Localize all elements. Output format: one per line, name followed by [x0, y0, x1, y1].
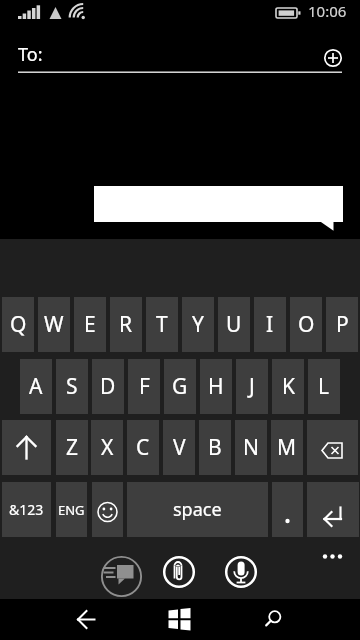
staticText: E — [84, 310, 96, 339]
staticText: Z — [66, 433, 79, 462]
staticText: W — [44, 310, 64, 339]
button[interactable]: Z — [56, 420, 88, 475]
staticText: S — [66, 372, 78, 401]
button[interactable]: W — [38, 297, 70, 352]
button[interactable]: space — [127, 482, 268, 537]
button[interactable]: O — [290, 297, 322, 352]
staticText: V — [173, 433, 186, 462]
staticText: J — [249, 372, 255, 401]
button[interactable]: K — [272, 359, 304, 414]
button[interactable]: R — [110, 297, 142, 352]
button[interactable]: D — [92, 359, 124, 414]
staticText: H — [208, 372, 224, 401]
button[interactable] — [70, 605, 100, 635]
button[interactable]: Q — [2, 297, 34, 352]
button[interactable] — [272, 482, 303, 537]
button[interactable]: T — [146, 297, 178, 352]
staticText: D — [100, 372, 116, 401]
button[interactable] — [100, 555, 143, 598]
button[interactable]: X — [91, 420, 123, 475]
button[interactable]: N — [235, 420, 267, 475]
button[interactable]: I — [254, 297, 286, 352]
staticText: To: — [18, 42, 43, 67]
staticText: 10:06 — [308, 1, 347, 21]
staticText: O — [298, 310, 315, 339]
button[interactable]: S — [56, 359, 88, 414]
button[interactable] — [165, 605, 195, 635]
staticText: F — [139, 372, 150, 401]
staticText: C — [136, 433, 150, 462]
button[interactable] — [92, 482, 123, 537]
button[interactable] — [322, 47, 344, 69]
button[interactable] — [2, 420, 51, 475]
button[interactable]: Y — [182, 297, 214, 352]
staticText: A — [29, 372, 43, 401]
button[interactable]: F — [128, 359, 160, 414]
button[interactable]: ENG — [56, 482, 87, 537]
button[interactable] — [307, 482, 359, 537]
button[interactable] — [224, 555, 258, 589]
button[interactable]: J — [236, 359, 268, 414]
staticText: Q — [10, 310, 27, 339]
button[interactable]: B — [199, 420, 231, 475]
button[interactable]: A — [20, 359, 52, 414]
staticText: T — [156, 310, 168, 339]
button[interactable] — [316, 547, 348, 566]
staticText: P — [336, 310, 349, 339]
button[interactable]: P — [326, 297, 358, 352]
button[interactable]: E — [74, 297, 106, 352]
staticText: space — [173, 497, 222, 522]
staticText: R — [119, 310, 133, 339]
staticText: X — [101, 433, 114, 462]
button[interactable]: G — [164, 359, 196, 414]
button[interactable] — [260, 605, 290, 635]
staticText: M — [277, 433, 297, 462]
button[interactable]: V — [163, 420, 195, 475]
staticText: &123 — [9, 500, 44, 519]
button[interactable]: L — [308, 359, 340, 414]
button[interactable]: C — [127, 420, 159, 475]
staticText: N — [243, 433, 259, 462]
button[interactable] — [162, 555, 196, 589]
staticText: B — [208, 433, 222, 462]
staticText: I — [266, 310, 274, 339]
button[interactable]: H — [200, 359, 232, 414]
staticText: Y — [192, 310, 204, 339]
button[interactable]: M — [271, 420, 303, 475]
staticText: L — [318, 372, 330, 401]
staticText: G — [172, 372, 188, 401]
button[interactable]: &123 — [2, 482, 51, 537]
staticText: U — [226, 310, 242, 339]
staticText: K — [282, 372, 295, 401]
staticText: ENG — [58, 501, 85, 519]
button[interactable] — [307, 420, 358, 475]
button[interactable]: U — [218, 297, 250, 352]
